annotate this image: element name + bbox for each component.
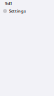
staticText: 9:41 (5, 1, 12, 6)
staticText: Settings (9, 8, 26, 14)
